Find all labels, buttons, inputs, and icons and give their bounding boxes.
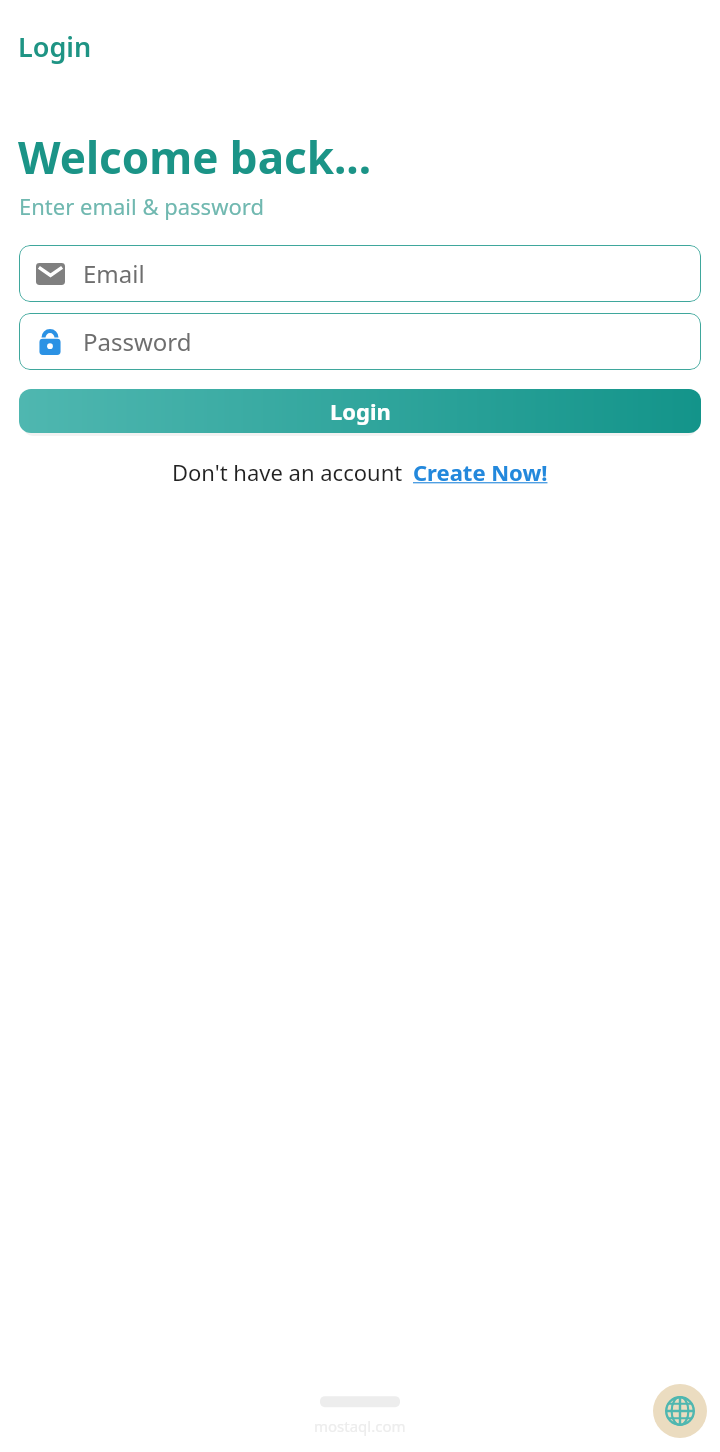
button[interactable]: Login — [19, 389, 701, 433]
staticText: Enter email & password — [19, 191, 264, 221]
button[interactable]: Login — [16, 26, 94, 67]
staticText: Login — [18, 28, 92, 65]
staticText: Login — [330, 396, 391, 426]
button[interactable]: Password — [19, 313, 701, 370]
staticText: Email — [83, 257, 145, 290]
staticText: Don't have an account — [172, 457, 403, 487]
button[interactable]: Create Now! — [413, 457, 548, 487]
staticText: Password — [83, 325, 192, 358]
button[interactable]: Email — [19, 245, 701, 302]
staticText: mostaql.com — [314, 1416, 406, 1436]
button[interactable]: Change language — [653, 1384, 707, 1438]
staticText: Create Now! — [413, 457, 548, 487]
staticText: Welcome back... — [18, 127, 372, 187]
